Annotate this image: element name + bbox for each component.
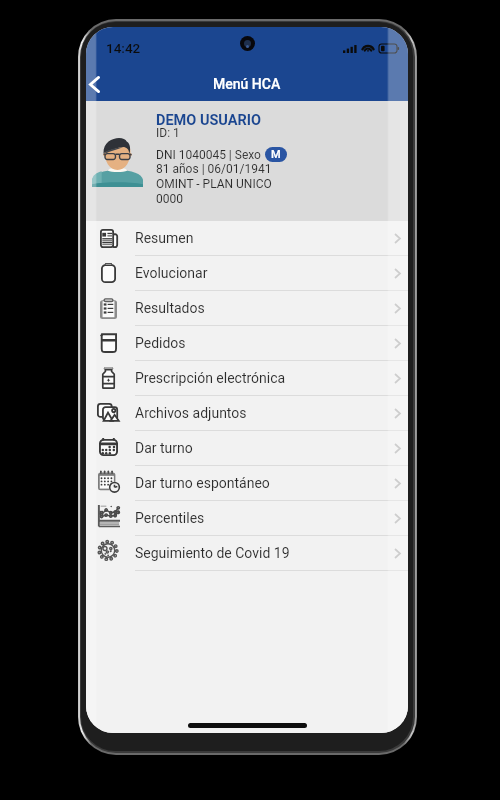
staticText: Archivos adjuntos <box>135 405 247 421</box>
staticText: Resumen <box>135 230 194 246</box>
button[interactable]: Dar turno <box>86 431 408 466</box>
staticText: 81 años | 06/01/1941 <box>156 162 272 176</box>
staticText: Prescripción electrónica <box>135 370 286 386</box>
staticText: 14:42 <box>106 40 141 56</box>
button[interactable]: Evolucionar <box>86 256 408 291</box>
staticText: Evolucionar <box>135 265 208 281</box>
button[interactable]: Resultados <box>86 291 408 326</box>
button[interactable]: Prescripción electrónica <box>86 361 408 396</box>
button[interactable]: Archivos adjuntos <box>86 396 408 431</box>
staticText: Resultados <box>135 300 205 316</box>
staticText: Pedidos <box>135 335 186 351</box>
staticText: M <box>271 148 281 161</box>
staticText: OMINT - PLAN UNICO <box>156 177 272 191</box>
staticText: Seguimiento de Covid 19 <box>135 545 290 561</box>
staticText: DNI 1040045 | Sexo <box>156 148 261 162</box>
button[interactable]: Percentiles <box>86 501 408 536</box>
button[interactable]: Pedidos <box>86 326 408 361</box>
staticText: DEMO USUARIO <box>156 112 262 129</box>
button[interactable]: Seguimiento de Covid 19 <box>86 536 408 571</box>
staticText: Dar turno <box>135 440 193 456</box>
button[interactable]: Resumen <box>86 221 408 256</box>
staticText: ID: 1 <box>156 126 180 140</box>
button[interactable]: Dar turno espontáneo <box>86 466 408 501</box>
staticText: Menú HCA <box>213 76 281 92</box>
staticText: 0000 <box>156 192 183 206</box>
button[interactable]: Back <box>86 68 110 100</box>
staticText: Percentiles <box>135 510 205 526</box>
staticText: Dar turno espontáneo <box>135 475 270 491</box>
